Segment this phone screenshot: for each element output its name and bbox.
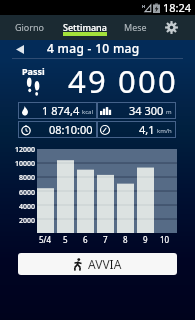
staticText: Settimana [63,21,107,33]
staticText: 4,1 [139,122,155,137]
button[interactable]: Impostazioni [157,15,186,40]
staticText: 08:10:00 [49,122,93,137]
button[interactable]: Giorno [0,15,57,40]
staticText: 18:24 [163,0,192,15]
staticText: 49 000 [68,60,178,101]
staticText: 2000 [19,216,36,226]
staticText: 5 [63,234,68,245]
button[interactable]: Settimana [57,15,114,40]
staticText: Giorno [15,21,45,33]
staticText: kcal [82,108,93,116]
staticText: km/h [157,127,172,135]
button[interactable]: Settimana precedente [8,40,32,59]
staticText: 10000 [15,159,36,169]
staticText: 12000 [15,145,36,155]
staticText: 4 mag - 10 mag [47,40,140,56]
staticText: 6 [83,234,88,245]
staticText: 6000 [19,188,36,198]
staticText: 8 [123,234,128,245]
staticText: Passi [22,65,45,77]
staticText: 10 [160,234,170,245]
staticText: 4000 [19,202,36,212]
staticText: 9 [143,234,148,245]
staticText: 1 874,4 [42,103,80,118]
staticText: 7 [103,234,108,245]
button[interactable]: Mese [114,15,157,40]
staticText: m [166,108,172,116]
staticText: 5/4 [39,234,52,245]
staticText: Mese [124,21,147,33]
staticText: 34 300 [129,103,164,118]
button[interactable]: AVVIA [18,253,177,275]
staticText: AVVIA [88,256,122,272]
staticText: 8000 [19,173,36,183]
